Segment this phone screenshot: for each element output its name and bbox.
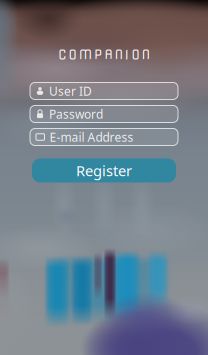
button[interactable]: Password bbox=[30, 105, 178, 122]
button[interactable]: Register bbox=[32, 158, 176, 182]
staticText: COMPANION bbox=[58, 48, 150, 62]
staticText: E-mail Address bbox=[49, 129, 133, 145]
button[interactable]: User ID bbox=[30, 82, 178, 99]
staticText: Password bbox=[49, 106, 103, 122]
staticText: Register bbox=[76, 161, 132, 180]
button[interactable]: E-mail Address bbox=[30, 128, 178, 145]
staticText: User ID bbox=[49, 83, 92, 99]
